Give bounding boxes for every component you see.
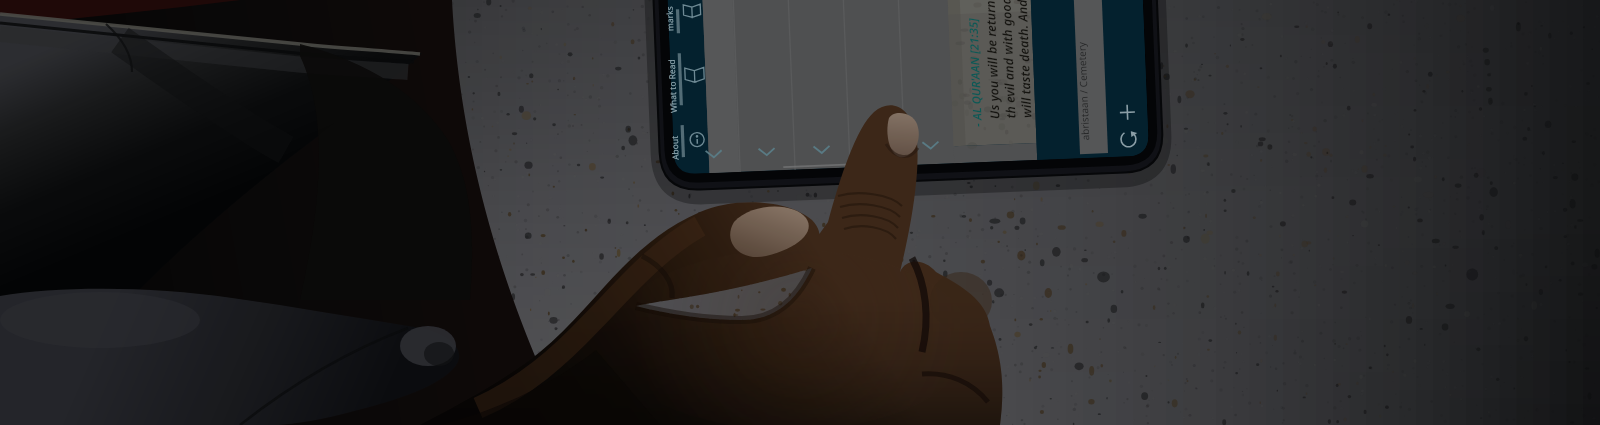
- staticText: abristaan / Cemetery: [1074, 41, 1092, 141]
- staticText: th evil and with good as: [997, 0, 1019, 119]
- button[interactable]: Hand tapping a phone app screen: [0, 0, 1600, 425]
- staticText: marks: [664, 6, 677, 31]
- staticText: - AL QUR'AAN [21:35]: [965, 18, 986, 127]
- staticText: will taste death. And We: [1013, 0, 1035, 118]
- staticText: What to Read: [666, 59, 680, 113]
- staticText: Us you will be returned.": [981, 0, 1003, 119]
- staticText: About: [669, 135, 682, 160]
